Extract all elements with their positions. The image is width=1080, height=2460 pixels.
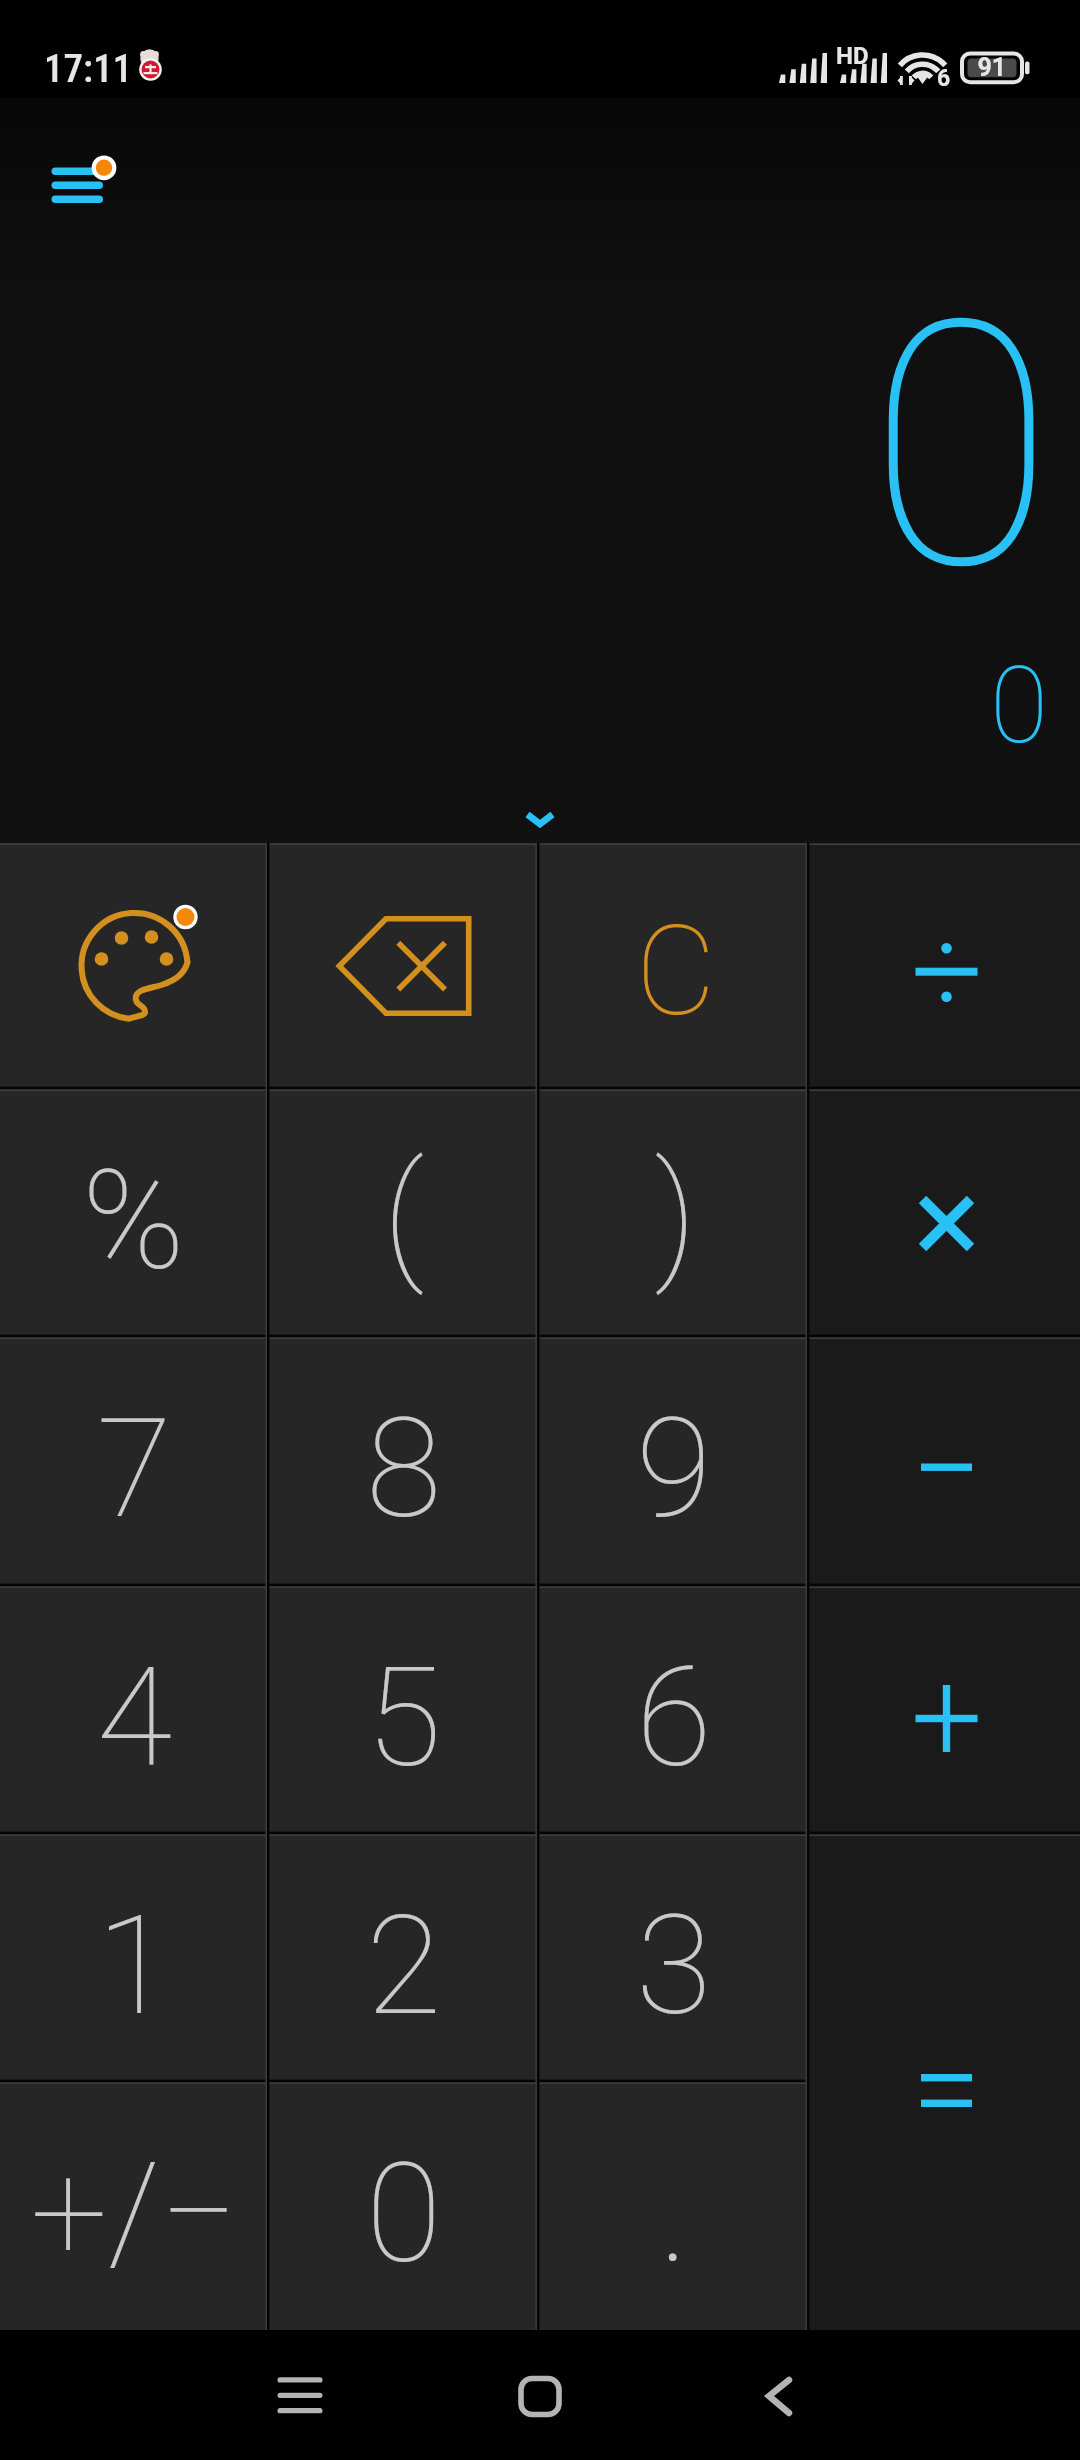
button[interactable]: Open parenthesis	[269, 1089, 539, 1337]
button[interactable]: Five	[269, 1586, 539, 1834]
button[interactable]: Plus	[809, 1586, 1080, 1834]
button[interactable]: Equals	[809, 1834, 1080, 2330]
button[interactable]: Home	[480, 2330, 600, 2450]
button[interactable]: Four	[0, 1586, 269, 1834]
button[interactable]: Two	[269, 1834, 539, 2082]
button[interactable]: Three	[539, 1834, 809, 2082]
button[interactable]: Color theme	[0, 843, 269, 1089]
button[interactable]: Back	[718, 2330, 838, 2450]
button[interactable]: Backspace	[269, 843, 539, 1089]
button[interactable]: Six	[539, 1586, 809, 1834]
button[interactable]: Percent	[0, 1089, 269, 1337]
button[interactable]: Close parenthesis	[539, 1089, 809, 1337]
button[interactable]: Plus minus	[0, 2082, 269, 2330]
button[interactable]: Multiply	[809, 1089, 1080, 1337]
button[interactable]: Eight	[269, 1337, 539, 1586]
button[interactable]: Zero	[269, 2082, 539, 2330]
button[interactable]: Show history	[465, 781, 615, 851]
button[interactable]: Nine	[539, 1337, 809, 1586]
button[interactable]: Clear	[539, 843, 809, 1089]
button[interactable]: Divide	[809, 843, 1080, 1089]
button[interactable]: Minus	[809, 1337, 1080, 1586]
button[interactable]: One	[0, 1834, 269, 2082]
button[interactable]: Menu	[26, 138, 128, 238]
button[interactable]: Decimal point	[539, 2082, 809, 2330]
button[interactable]: Recents	[240, 2330, 360, 2450]
button[interactable]: Seven	[0, 1337, 269, 1586]
